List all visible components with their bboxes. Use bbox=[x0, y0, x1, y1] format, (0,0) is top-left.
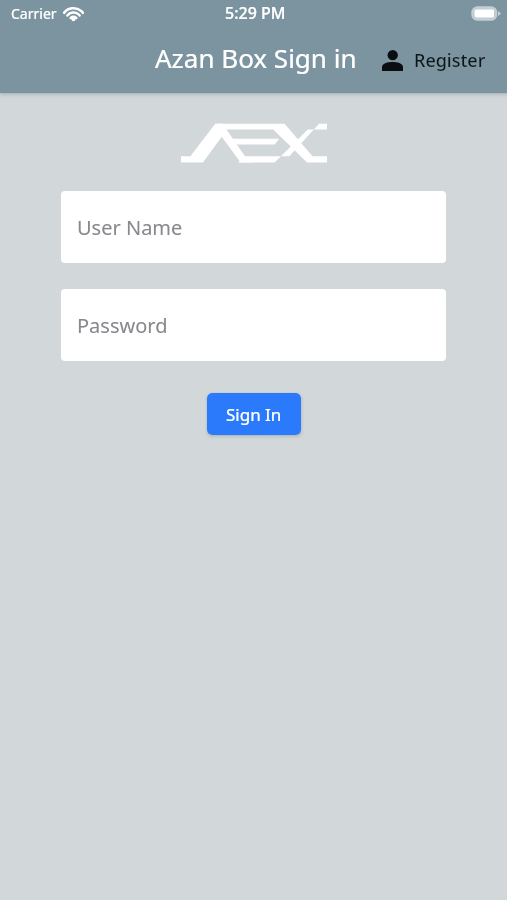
staticText: Sign In bbox=[226, 403, 282, 426]
staticText: User Name bbox=[77, 214, 183, 241]
button[interactable]: Password bbox=[61, 289, 446, 361]
staticText: Register bbox=[414, 48, 486, 73]
button[interactable]: Register bbox=[378, 44, 490, 77]
button[interactable]: Sign In bbox=[207, 393, 301, 435]
staticText: 5:29 PM bbox=[225, 2, 286, 24]
staticText: Azan Box Sign in bbox=[155, 40, 357, 75]
staticText: Carrier bbox=[11, 4, 57, 23]
other: Register bbox=[382, 50, 403, 71]
staticText: Password bbox=[77, 312, 168, 339]
button[interactable]: User Name bbox=[61, 191, 446, 263]
